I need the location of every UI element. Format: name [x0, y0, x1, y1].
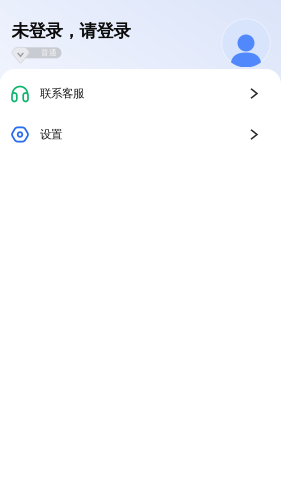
- staticText: 未登录，请登录: [11, 20, 130, 42]
- staticText: 设置: [40, 127, 62, 142]
- button[interactable]: 设置: [0, 114, 281, 155]
- button[interactable]: 联系客服: [0, 73, 281, 114]
- staticText: 联系客服: [40, 86, 84, 101]
- staticText: 普通: [41, 48, 57, 58]
